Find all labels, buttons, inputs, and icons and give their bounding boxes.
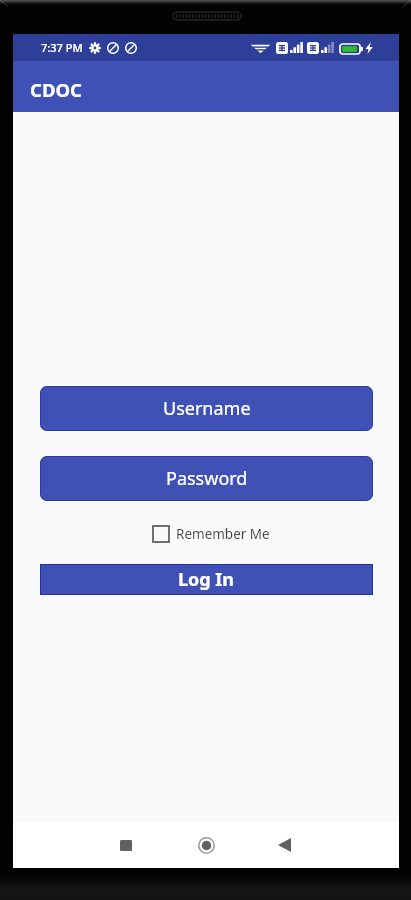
- button[interactable]: Home: [184, 823, 228, 867]
- button[interactable]: Recent apps: [104, 823, 148, 867]
- button[interactable]: Username: [40, 386, 373, 431]
- staticText: Username: [163, 396, 251, 421]
- button[interactable]: Back: [262, 823, 306, 867]
- staticText: Password: [166, 466, 248, 491]
- button[interactable]: Password: [40, 456, 373, 501]
- button[interactable]: Remember Me: [149, 522, 274, 546]
- staticText: CDOC: [30, 77, 82, 102]
- staticText: 7:37 PM: [41, 40, 83, 55]
- button[interactable]: Log In: [40, 564, 373, 595]
- staticText: Remember Me: [176, 525, 270, 543]
- staticText: Log In: [178, 567, 235, 592]
